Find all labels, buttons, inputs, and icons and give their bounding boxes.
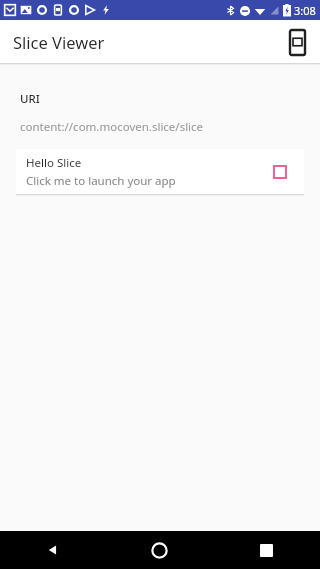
staticText: 3:08: [294, 3, 316, 18]
staticText: Hello Slice: [26, 155, 82, 171]
staticText: URI: [20, 91, 40, 107]
button[interactable]: Home: [106, 531, 213, 569]
button[interactable]: Recents: [213, 531, 320, 569]
staticText: content://com.mocoven.slice/slice: [20, 119, 204, 135]
button[interactable]: Toggle: [270, 162, 290, 182]
staticText: Click me to launch your app: [26, 173, 176, 189]
button[interactable]: Select device: [282, 27, 312, 57]
button[interactable]: Hello Slice: [16, 149, 304, 194]
button[interactable]: Back: [0, 531, 106, 569]
staticText: Slice Viewer: [13, 31, 105, 53]
